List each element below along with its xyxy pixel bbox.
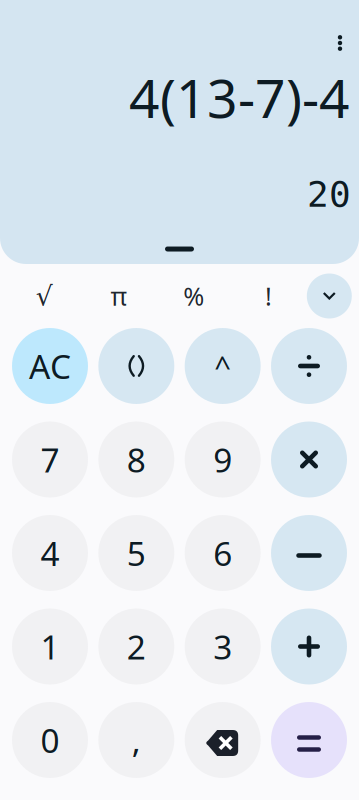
button[interactable]: π <box>82 264 156 328</box>
staticText: 20 <box>307 174 351 215</box>
button[interactable]: Divide <box>271 328 347 404</box>
staticText: 2 <box>127 624 146 669</box>
button[interactable]: , <box>98 702 174 778</box>
staticText: 4(13-7)-4 <box>129 62 350 133</box>
staticText: 1 <box>40 624 59 669</box>
button[interactable]: ! <box>231 264 306 328</box>
staticText: π <box>111 279 128 313</box>
button[interactable]: 6 <box>185 515 261 591</box>
staticText: 8 <box>127 437 146 482</box>
button[interactable]: 3 <box>185 608 261 684</box>
button[interactable]: Multiply <box>271 421 347 497</box>
staticText: √ <box>36 281 53 311</box>
button[interactable]: Show more functions <box>306 264 353 328</box>
button[interactable]: ^ <box>185 328 261 404</box>
staticText: 0 <box>40 718 59 762</box>
button[interactable]: Collapse display <box>0 234 359 264</box>
staticText: 7 <box>40 437 59 482</box>
button[interactable]: 5 <box>98 515 174 591</box>
staticText: 5 <box>127 531 146 575</box>
staticText: 6 <box>213 531 232 575</box>
button[interactable]: √ <box>7 264 82 328</box>
button[interactable]: Parentheses <box>98 328 174 404</box>
button[interactable]: 0 <box>12 702 88 778</box>
button[interactable]: 8 <box>98 421 174 497</box>
button[interactable]: % <box>156 264 231 328</box>
button[interactable]: 1 <box>12 608 88 684</box>
button[interactable]: 2 <box>98 608 174 684</box>
staticText: ^ <box>214 346 231 385</box>
button[interactable]: AC <box>12 328 88 404</box>
button[interactable]: Backspace <box>185 702 261 778</box>
staticText: 3 <box>213 624 232 669</box>
staticText: 9 <box>213 437 232 482</box>
staticText: ! <box>265 279 272 313</box>
button[interactable]: Equals <box>271 702 347 778</box>
button[interactable]: Minus <box>271 515 347 591</box>
staticText: , <box>132 718 141 762</box>
button[interactable]: Plus <box>271 608 347 684</box>
staticText: % <box>183 279 204 313</box>
button[interactable]: More options <box>321 24 359 62</box>
button[interactable]: 4 <box>12 515 88 591</box>
button[interactable]: 9 <box>185 421 261 497</box>
button[interactable]: 7 <box>12 421 88 497</box>
staticText: AC <box>29 344 71 388</box>
staticText: 4 <box>40 531 59 575</box>
